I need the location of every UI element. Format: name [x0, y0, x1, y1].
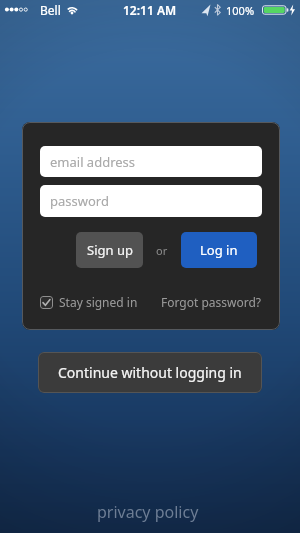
button[interactable]: password [40, 185, 262, 217]
button[interactable]: Continue without logging in [38, 352, 262, 393]
staticText: or [156, 243, 168, 258]
button[interactable]: privacy policy [97, 501, 199, 523]
staticText: Sign up [87, 241, 133, 259]
staticText: Continue without logging in [58, 363, 242, 382]
staticText: Log in [200, 241, 238, 259]
staticText: 100% [226, 3, 255, 18]
button[interactable]: Forgot password? [161, 294, 262, 310]
staticText: email address [50, 153, 136, 171]
button[interactable]: Sign up [76, 232, 143, 268]
staticText: Bell [40, 2, 61, 18]
button[interactable]: Log in [181, 232, 257, 268]
button[interactable]: Stay signed in [59, 294, 138, 310]
staticText: password [50, 192, 109, 210]
button[interactable] [40, 296, 53, 309]
staticText: 12:11 AM [123, 2, 177, 18]
button[interactable]: email address [40, 146, 262, 177]
